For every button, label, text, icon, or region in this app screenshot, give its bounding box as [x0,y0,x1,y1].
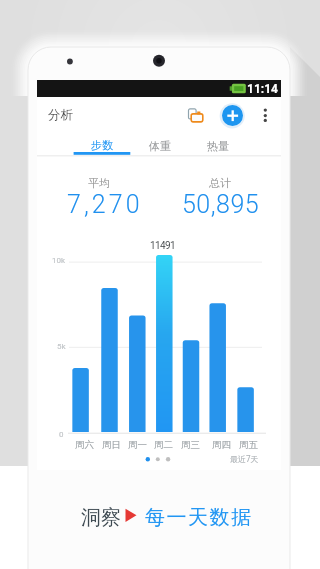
staticText: 分析 [48,107,73,123]
button[interactable] [186,105,206,125]
button[interactable]: 步数 [74,132,130,157]
staticText: 体重 [149,139,171,153]
staticText: 5k [57,342,66,351]
staticText: 平均 [88,176,110,190]
staticText: 周六 [75,439,94,451]
staticText: 11491 [150,240,176,252]
staticText: 0 [59,430,64,439]
staticText: 热量 [207,139,229,153]
button[interactable]: 热量 [190,133,246,158]
button[interactable] [222,105,243,126]
staticText: 总计 [209,176,231,190]
staticText: 周四 [212,439,231,451]
staticText: 最近7天 [230,453,259,464]
button[interactable] [258,104,273,128]
staticText: 洞察 [81,505,121,527]
staticText: 每一天数据 [145,505,253,527]
staticText: 周三 [181,439,200,451]
staticText: 周日 [102,439,121,451]
staticText: 50,895 [182,190,260,217]
button[interactable]: 每一天数据 [142,505,256,527]
staticText: 周一 [128,439,147,451]
button[interactable]: 体重 [132,133,188,158]
staticText: 11:14 [247,82,278,96]
staticText: 10k [52,256,66,265]
staticText: 周二 [154,439,173,451]
staticText: 7,270 [67,190,143,217]
staticText: 步数 [91,138,113,152]
staticText: 周五 [239,439,258,451]
